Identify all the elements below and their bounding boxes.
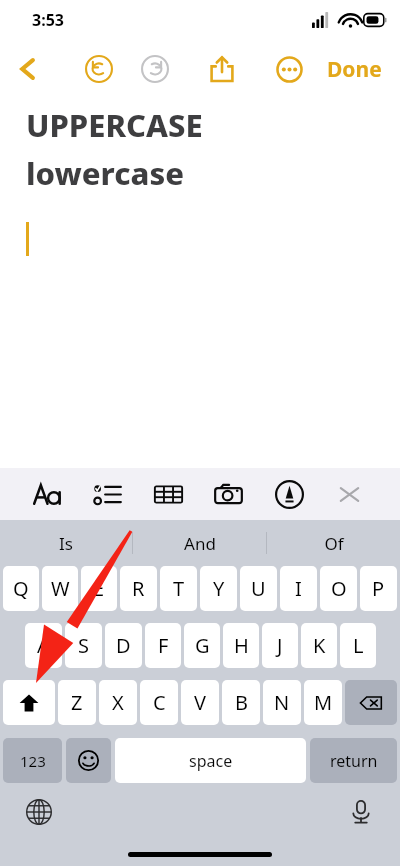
staticText: Done — [327, 55, 382, 84]
button[interactable]: And — [133, 520, 266, 566]
staticText: A — [37, 632, 50, 659]
staticText: V — [194, 689, 206, 716]
button[interactable]: More — [267, 47, 311, 91]
button[interactable]: Markup — [268, 473, 310, 515]
staticText: R — [132, 575, 145, 602]
staticText: J — [277, 632, 283, 659]
staticText: space — [189, 750, 233, 772]
button[interactable]: Undo — [77, 47, 121, 91]
button[interactable]: Is — [0, 520, 132, 566]
button[interactable]: 123 — [3, 738, 62, 783]
button[interactable]: Q — [3, 566, 39, 611]
button[interactable]: R — [120, 566, 157, 611]
staticText: H — [234, 632, 249, 659]
button[interactable]: I — [280, 566, 317, 611]
button[interactable]: M — [304, 680, 342, 725]
button[interactable]: F — [145, 623, 181, 668]
staticText: Q — [13, 575, 29, 602]
button[interactable]: O — [320, 566, 357, 611]
button[interactable]: B — [222, 680, 260, 725]
button[interactable]: X — [99, 680, 137, 725]
staticText: 123 — [20, 751, 46, 771]
staticText: K — [313, 632, 326, 659]
staticText: And — [184, 532, 216, 555]
button[interactable]: Back — [6, 47, 50, 91]
button[interactable]: Dictate — [340, 791, 382, 833]
staticText: E — [93, 575, 105, 602]
button[interactable]: V — [181, 680, 219, 725]
button[interactable]: C — [140, 680, 178, 725]
button[interactable]: Y — [200, 566, 237, 611]
button[interactable]: Z — [58, 680, 96, 725]
staticText: P — [372, 575, 385, 602]
button[interactable]: P — [360, 566, 397, 611]
staticText: Of — [324, 532, 344, 555]
button[interactable]: J — [262, 623, 298, 668]
button[interactable]: Camera — [207, 473, 249, 515]
staticText: U — [251, 575, 266, 602]
staticText: G — [195, 632, 210, 659]
button[interactable]: Checklist — [86, 473, 128, 515]
button[interactable]: S — [65, 623, 102, 668]
staticText: UPPERCASE — [26, 104, 203, 146]
button[interactable]: N — [263, 680, 301, 725]
staticText: W — [51, 575, 70, 602]
button[interactable]: L — [340, 623, 376, 668]
staticText: I — [295, 575, 302, 602]
staticText: C — [153, 689, 166, 716]
staticText: F — [158, 632, 169, 659]
staticText: Z — [71, 689, 83, 716]
button[interactable]: space — [115, 738, 306, 783]
button[interactable]: W — [42, 566, 78, 611]
staticText: return — [330, 750, 378, 772]
staticText: X — [112, 689, 124, 716]
button[interactable]: G — [184, 623, 220, 668]
staticText: Y — [213, 575, 225, 602]
button[interactable]: Share — [200, 47, 244, 91]
button[interactable]: Of — [267, 520, 400, 566]
button[interactable]: U — [240, 566, 277, 611]
button[interactable]: return — [310, 738, 397, 783]
staticText: S — [78, 632, 89, 659]
staticText: T — [173, 575, 185, 602]
button[interactable]: D — [105, 623, 142, 668]
button[interactable]: Close keyboard — [328, 473, 370, 515]
button[interactable]: Backspace — [345, 680, 397, 725]
button[interactable]: A — [25, 623, 62, 668]
button[interactable]: Done — [321, 47, 388, 92]
button[interactable]: T — [160, 566, 197, 611]
staticText: N — [274, 689, 290, 716]
button[interactable]: E — [81, 566, 117, 611]
button[interactable]: Emoji — [66, 738, 111, 783]
staticText: 3:53 — [32, 9, 64, 31]
staticText: M — [314, 689, 333, 716]
staticText: lowercase — [26, 152, 185, 194]
button[interactable]: K — [301, 623, 337, 668]
button[interactable]: Text format — [26, 473, 68, 515]
button[interactable]: H — [223, 623, 259, 668]
staticText: B — [235, 689, 248, 716]
button[interactable]: Change keyboard — [18, 791, 60, 833]
staticText: O — [331, 575, 347, 602]
staticText: D — [116, 632, 131, 659]
button[interactable]: Table — [147, 473, 189, 515]
button[interactable]: Shift — [3, 680, 55, 725]
staticText: Is — [59, 532, 73, 555]
staticText: L — [353, 632, 364, 659]
button[interactable]: Redo — [133, 47, 177, 91]
